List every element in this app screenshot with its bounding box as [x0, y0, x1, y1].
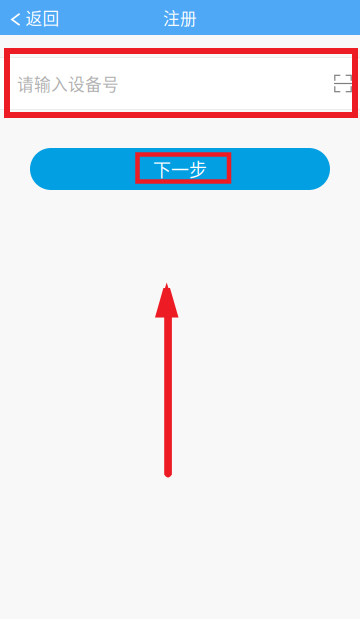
- staticText: 请输入设备号: [17, 71, 119, 95]
- staticText: 注册: [163, 5, 197, 29]
- staticText: 下一步: [153, 156, 207, 182]
- button[interactable]: 扫描二维码: [320, 60, 360, 106]
- button[interactable]: 返回: [0, 0, 71, 35]
- staticText: 返回: [25, 5, 59, 29]
- button[interactable]: 下一步: [30, 148, 330, 190]
